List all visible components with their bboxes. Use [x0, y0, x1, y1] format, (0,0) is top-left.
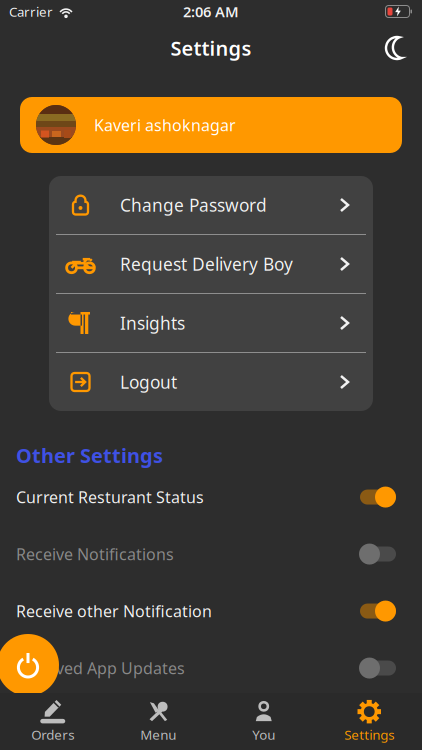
button[interactable]: Received App Updates: [0, 640, 422, 697]
staticText: Current Resturant Status: [16, 486, 204, 508]
button[interactable]: Toggle dark mode: [376, 27, 418, 69]
staticText: 2:06 AM: [183, 2, 239, 21]
button[interactable]: Menu: [105, 693, 211, 749]
staticText: Change Password: [120, 193, 267, 216]
staticText: Carrier: [9, 3, 53, 20]
button[interactable]: Receive Notifications: [0, 526, 422, 583]
staticText: Logout: [120, 370, 177, 393]
button[interactable]: Change Password: [49, 176, 373, 234]
staticText: Kaveri ashoknagar: [94, 114, 236, 136]
staticText: Menu: [140, 726, 176, 743]
button[interactable]: Orders: [0, 693, 105, 749]
button[interactable]: Kaveri ashoknagar: [0, 97, 422, 153]
button[interactable]: Settings: [316, 693, 422, 749]
staticText: Request Delivery Boy: [120, 252, 293, 275]
staticText: Settings: [344, 726, 394, 743]
button[interactable]: Logout: [49, 353, 373, 411]
staticText: Received App Updates: [16, 657, 185, 679]
staticText: You: [252, 726, 275, 743]
button[interactable]: You: [211, 693, 316, 749]
staticText: Settings: [170, 35, 251, 61]
staticText: Receive Notifications: [16, 543, 174, 565]
staticText: Insights: [120, 311, 185, 334]
button[interactable]: Request Delivery Boy: [49, 235, 373, 293]
button[interactable]: Current Resturant Status: [0, 469, 422, 526]
button[interactable]: Power: [0, 634, 59, 696]
button[interactable]: Receive other Notification: [0, 583, 422, 640]
button[interactable]: Insights: [49, 294, 373, 352]
staticText: Orders: [31, 726, 74, 743]
staticText: Other Settings: [16, 442, 163, 469]
staticText: Receive other Notification: [16, 600, 212, 622]
